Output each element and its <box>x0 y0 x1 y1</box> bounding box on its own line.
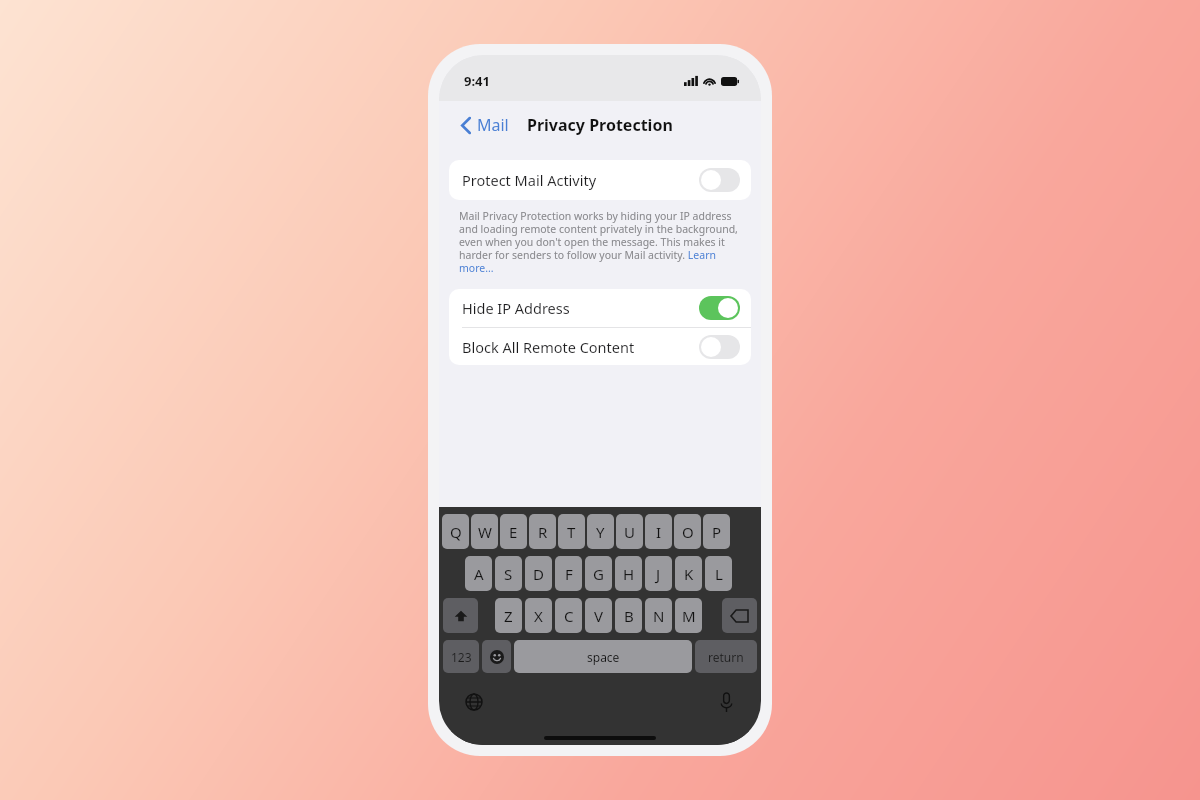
staticText: Q <box>450 522 462 542</box>
staticText: F <box>565 564 573 584</box>
button[interactable]: E <box>500 514 527 549</box>
button[interactable]: K <box>675 556 702 591</box>
staticText: A <box>474 564 484 584</box>
button[interactable]: V <box>585 598 612 633</box>
button[interactable]: Emoji <box>482 640 511 673</box>
staticText: C <box>564 606 574 626</box>
button[interactable]: Shift <box>443 598 478 633</box>
staticText: T <box>567 522 576 542</box>
staticText: V <box>594 606 604 626</box>
button[interactable]: Z <box>495 598 522 633</box>
button[interactable]: Q <box>442 514 469 549</box>
button[interactable]: Dictate <box>711 687 741 717</box>
staticText: H <box>623 564 635 584</box>
staticText: Mail Privacy Protection works by hiding … <box>459 209 741 275</box>
button[interactable]: Block All Remote Content <box>449 328 751 365</box>
staticText: Y <box>596 522 605 542</box>
button[interactable]: D <box>525 556 552 591</box>
staticText: Z <box>504 606 513 626</box>
button[interactable]: M <box>675 598 702 633</box>
button[interactable]: I <box>645 514 672 549</box>
staticText: U <box>624 522 635 542</box>
button[interactable]: Protect Mail Activity <box>449 160 751 200</box>
button[interactable]: Y <box>587 514 614 549</box>
button[interactable]: F <box>555 556 582 591</box>
staticText: 123 <box>451 649 472 665</box>
button[interactable]: J <box>645 556 672 591</box>
button[interactable]: Toggle on <box>699 296 740 320</box>
staticText: S <box>504 564 513 584</box>
button[interactable]: space <box>514 640 692 673</box>
staticText: X <box>534 606 543 626</box>
staticText: G <box>593 564 604 584</box>
button[interactable]: Hide IP Address <box>449 289 751 327</box>
staticText: Protect Mail Activity <box>462 170 597 190</box>
staticText: E <box>509 522 518 542</box>
staticText: Mail <box>477 114 509 136</box>
button[interactable]: A <box>465 556 492 591</box>
staticText: K <box>684 564 694 584</box>
staticText: return <box>708 649 744 665</box>
button[interactable]: G <box>585 556 612 591</box>
staticText: P <box>712 522 722 542</box>
staticText: O <box>682 522 694 542</box>
button[interactable]: C <box>555 598 582 633</box>
button[interactable]: R <box>529 514 556 549</box>
staticText: R <box>538 522 548 542</box>
button[interactable]: O <box>674 514 701 549</box>
button[interactable]: return <box>695 640 757 673</box>
button[interactable]: X <box>525 598 552 633</box>
staticText: L <box>715 564 723 584</box>
staticText: J <box>656 564 661 584</box>
button[interactable]: H <box>615 556 642 591</box>
button[interactable]: Toggle off <box>699 335 740 359</box>
button[interactable]: Change keyboard <box>459 687 489 717</box>
staticText: N <box>653 606 665 626</box>
button[interactable]: B <box>615 598 642 633</box>
staticText: I <box>656 522 662 542</box>
button[interactable]: T <box>558 514 585 549</box>
staticText: space <box>587 649 620 665</box>
staticText: B <box>624 606 634 626</box>
staticText: Block All Remote Content <box>462 337 635 357</box>
button[interactable]: Backspace <box>722 598 757 633</box>
staticText: Privacy Protection <box>527 114 673 136</box>
staticText: Hide IP Address <box>462 298 570 318</box>
button[interactable]: L <box>705 556 732 591</box>
staticText: M <box>682 606 696 626</box>
button[interactable]: Mail <box>457 110 513 140</box>
button[interactable]: W <box>471 514 498 549</box>
button[interactable]: U <box>616 514 643 549</box>
staticText: D <box>533 564 544 584</box>
button[interactable]: N <box>645 598 672 633</box>
staticText: 9:41 <box>464 72 490 90</box>
button[interactable]: 123 <box>443 640 479 673</box>
button[interactable]: S <box>495 556 522 591</box>
staticText: W <box>478 522 492 542</box>
button[interactable]: P <box>703 514 730 549</box>
button[interactable]: Toggle off <box>699 168 740 192</box>
